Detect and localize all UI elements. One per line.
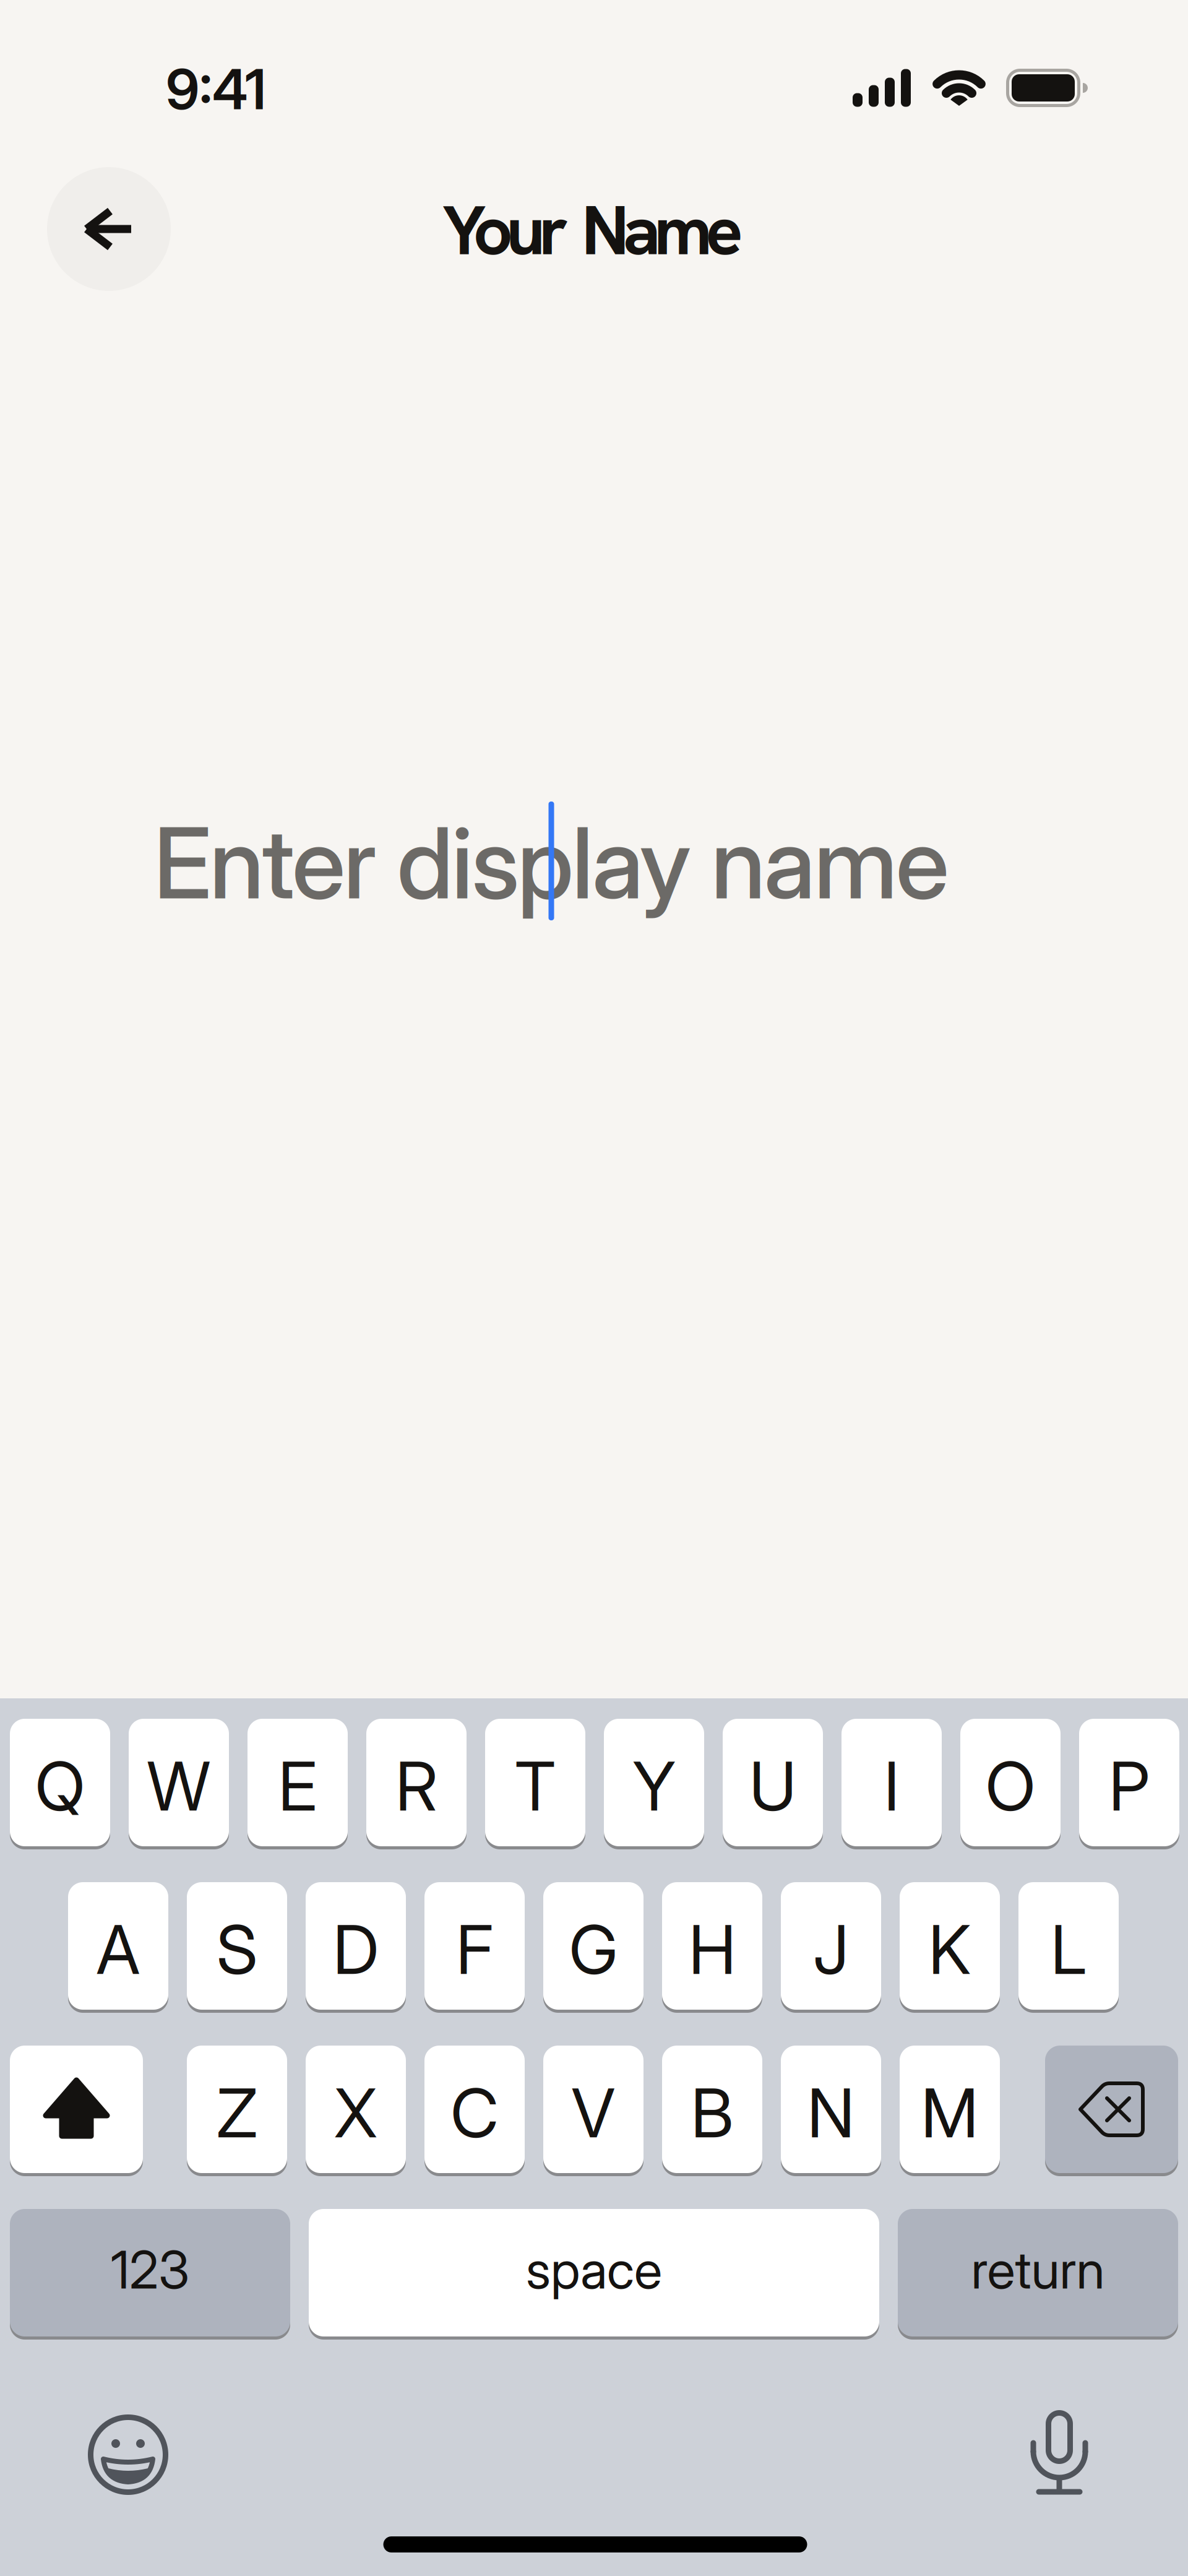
button[interactable]: W [129,1719,229,1846]
staticText: T [515,1746,556,1827]
button[interactable]: U [723,1719,823,1846]
staticText: Enter display name [154,804,949,922]
staticText: 123 [111,2238,189,2301]
staticText: N [807,2073,855,2154]
staticText: G [569,1909,618,1990]
button[interactable]: M [900,2046,1000,2173]
staticText: V [571,2073,615,2154]
staticText: F [456,1909,493,1990]
button[interactable]: B [662,2046,762,2173]
staticText: P [1109,1746,1150,1827]
staticText: M [921,2073,979,2154]
staticText: Q [35,1746,85,1827]
staticText: I [884,1746,899,1827]
button[interactable]: F [424,1882,525,2010]
button[interactable]: 123 [10,2209,290,2336]
button[interactable]: C [424,2046,525,2173]
button[interactable]: P [1079,1719,1179,1846]
staticText: K [928,1909,971,1990]
staticText: space [526,2238,662,2301]
staticText: Z [217,2073,257,2154]
button[interactable]: Y [604,1719,704,1846]
button[interactable]: E [247,1719,348,1846]
staticText: D [333,1909,379,1990]
staticText: L [1051,1909,1087,1990]
button[interactable]: J [781,1882,881,2010]
staticText: C [450,2073,499,2154]
button[interactable]: S [187,1882,287,2010]
staticText: S [217,1909,257,1990]
button[interactable]: D [306,1882,406,2010]
button[interactable]: Z [187,2046,287,2173]
button[interactable]: space [309,2209,879,2336]
staticText: B [691,2073,734,2154]
button[interactable]: T [485,1719,585,1846]
button[interactable]: O [960,1719,1061,1846]
staticText: O [985,1746,1035,1827]
staticText: X [334,2073,377,2154]
button[interactable]: G [543,1882,643,2010]
button[interactable]: Delete [1045,2046,1178,2173]
staticText: A [96,1909,140,1990]
button[interactable]: X [306,2046,406,2173]
staticText: U [749,1746,796,1827]
staticText: return [971,2238,1105,2301]
button[interactable]: I [841,1719,942,1846]
button[interactable]: Dictation [1016,2408,1103,2494]
staticText: H [689,1909,736,1990]
staticText: J [813,1909,849,1990]
button[interactable]: Q [10,1719,110,1846]
staticText: Your [443,185,568,275]
button[interactable]: R [366,1719,467,1846]
button[interactable]: Shift [10,2046,143,2173]
button[interactable]: Back [47,167,171,291]
staticText: 9:41 [166,56,266,123]
staticText: R [395,1746,437,1827]
button[interactable]: V [543,2046,643,2173]
staticText: Y [633,1746,675,1827]
button[interactable]: Emoji [85,2411,171,2498]
button[interactable]: L [1018,1882,1119,2010]
button[interactable]: K [900,1882,1000,2010]
button[interactable]: return [898,2209,1178,2336]
staticText: Name [582,185,743,275]
staticText: E [278,1746,317,1827]
button[interactable]: A [68,1882,168,2010]
button[interactable]: H [662,1882,762,2010]
button[interactable]: N [781,2046,881,2173]
staticText: W [147,1746,211,1827]
